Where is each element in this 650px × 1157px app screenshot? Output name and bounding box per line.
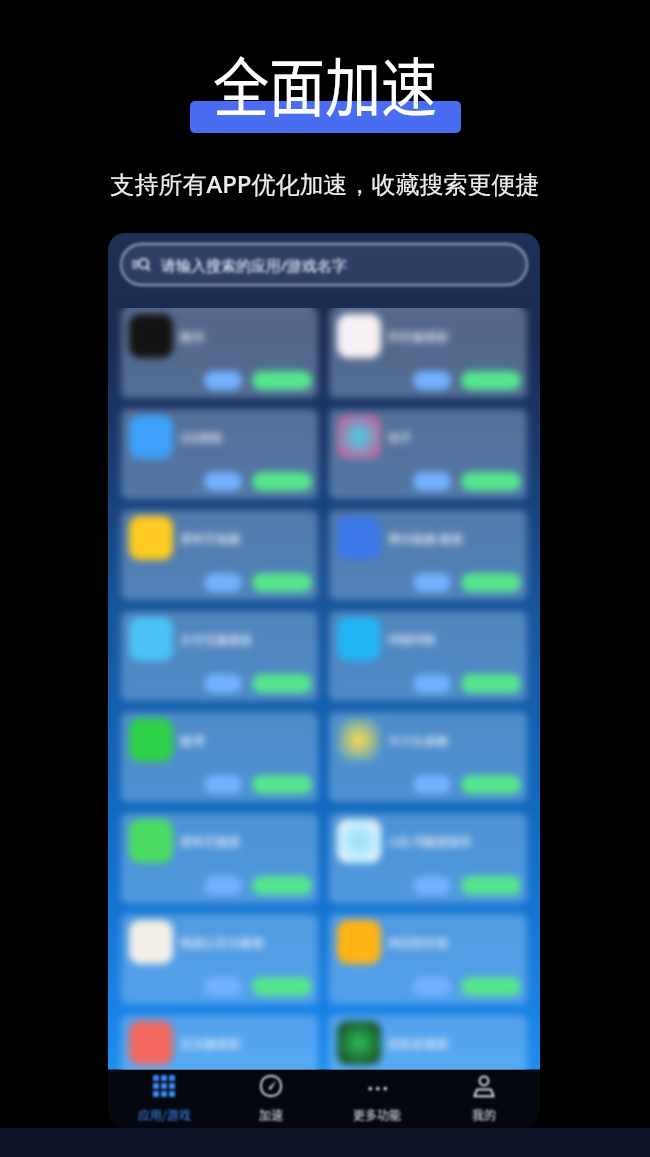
button[interactable]: 爱奇艺视频 — [121, 510, 318, 600]
staticText: 拼多多极速 — [388, 1036, 448, 1051]
button[interactable]: 快手 — [329, 409, 527, 499]
button[interactable]: QQ浏览 — [121, 409, 318, 499]
staticText: 应用/游戏 — [138, 1106, 191, 1123]
staticText: 爱奇艺极速 — [180, 834, 240, 849]
button[interactable]: 哔哩哔哩 — [329, 611, 527, 701]
staticText: 加速 — [259, 1106, 284, 1123]
staticText: 京东极速版 — [180, 1036, 240, 1051]
button[interactable]: 我的 — [434, 1070, 534, 1128]
button[interactable] — [413, 876, 451, 895]
staticText: 淘宝特价版 — [388, 935, 448, 950]
button[interactable] — [204, 472, 242, 491]
staticText: 抖音极速版 — [388, 329, 448, 344]
other: 应用/游戏 — [153, 1075, 175, 1097]
button[interactable] — [461, 1078, 521, 1097]
button[interactable] — [461, 371, 521, 390]
button[interactable]: 今日头条极 — [329, 712, 527, 802]
button[interactable] — [461, 573, 521, 592]
other: 更多功能 — [366, 1075, 388, 1097]
other: 加速 — [260, 1075, 282, 1097]
staticText: 请输入搜索的应用/游戏名字 — [161, 255, 347, 275]
staticText: 我的 — [472, 1106, 497, 1123]
button[interactable]: 爱奇艺极速 — [121, 813, 318, 903]
button[interactable] — [252, 775, 312, 794]
button[interactable]: 微信 — [121, 308, 318, 398]
other: 我的 — [473, 1075, 495, 1097]
button[interactable] — [413, 472, 451, 491]
button[interactable]: 请输入搜索的应用/游戏名字 — [121, 244, 527, 285]
button[interactable]: 淘宝特价版 — [329, 914, 527, 1004]
button[interactable] — [413, 674, 451, 693]
button[interactable] — [461, 977, 521, 996]
staticText: 腾讯视频 极速 — [388, 530, 464, 546]
button[interactable]: 拼多多极速 — [329, 1015, 527, 1105]
button[interactable] — [461, 674, 521, 693]
staticText: QQ浏览 — [180, 429, 223, 445]
button[interactable]: 腾讯视频 极速 — [329, 510, 527, 600]
button[interactable] — [204, 573, 242, 592]
staticText: 全面加速 — [0, 37, 650, 129]
button[interactable] — [204, 876, 242, 895]
button[interactable] — [252, 573, 312, 592]
button[interactable]: 应用/游戏 — [114, 1070, 214, 1128]
staticText: 哔哩哔哩 — [388, 632, 436, 647]
staticText: 小红书极速版本 — [388, 834, 472, 849]
button[interactable] — [461, 472, 521, 491]
button[interactable] — [413, 775, 451, 794]
button[interactable] — [413, 573, 451, 592]
button[interactable] — [252, 674, 312, 693]
button[interactable] — [461, 876, 521, 895]
button[interactable] — [204, 977, 242, 996]
button[interactable] — [252, 1078, 312, 1097]
staticText: 网易云音乐极速 — [180, 935, 264, 950]
button[interactable] — [252, 876, 312, 895]
staticText: 支持所有APP优化加速，收藏搜索更便捷 — [0, 167, 650, 200]
button[interactable] — [413, 371, 451, 390]
staticText: 微博 — [180, 733, 204, 748]
staticText: 微信 — [180, 329, 204, 344]
button[interactable]: 抖音极速版 — [329, 308, 527, 398]
button[interactable] — [461, 775, 521, 794]
button[interactable]: 更多功能 — [327, 1070, 427, 1128]
staticText: 今日头条极 — [388, 733, 448, 748]
staticText: 爱奇艺视频 — [180, 531, 240, 546]
staticText: 支付宝极速版 — [180, 632, 252, 647]
button[interactable]: 网易云音乐极速 — [121, 914, 318, 1004]
button[interactable] — [204, 674, 242, 693]
button[interactable] — [252, 977, 312, 996]
button[interactable]: 加速 — [221, 1070, 321, 1128]
button[interactable]: 支付宝极速版 — [121, 611, 318, 701]
button[interactable] — [204, 371, 242, 390]
button[interactable] — [252, 472, 312, 491]
staticText: 更多功能 — [353, 1106, 402, 1123]
button[interactable]: 小红书极速版本 — [329, 813, 527, 903]
button[interactable] — [252, 371, 312, 390]
button[interactable]: 京东极速版 — [121, 1015, 318, 1105]
button[interactable] — [413, 977, 451, 996]
button[interactable]: 微博 — [121, 712, 318, 802]
staticText: 快手 — [388, 430, 412, 445]
button[interactable] — [204, 775, 242, 794]
